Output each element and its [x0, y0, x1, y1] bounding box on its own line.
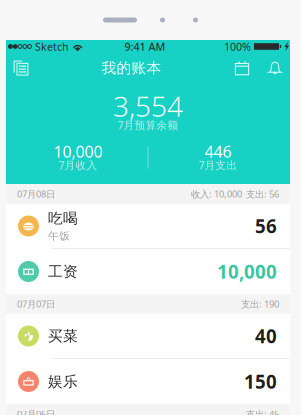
staticText: 40 [255, 324, 277, 348]
staticText: 7月支出 [198, 158, 237, 172]
staticText: 买菜 [48, 327, 78, 345]
staticText: 娱乐 [48, 372, 78, 390]
staticText: 9:41 AM [124, 39, 165, 54]
button[interactable]: 工资 [6, 249, 290, 294]
button[interactable]: 买菜 [6, 314, 290, 359]
staticText: 56 [255, 214, 277, 238]
staticText: 3,554 [113, 87, 183, 125]
staticText: 07月06日 [17, 408, 55, 415]
staticText: 午饭 [48, 229, 70, 243]
staticText: 7月收入 [58, 158, 97, 172]
button[interactable]: Calendar [229, 54, 255, 82]
staticText: 07月08日 [17, 188, 55, 200]
staticText: 446 [204, 141, 231, 162]
staticText: 工资 [48, 262, 78, 280]
staticText: 10,000 [53, 141, 102, 162]
staticText: 10,000 [217, 259, 277, 284]
staticText: 我的账本 [101, 59, 161, 77]
staticText: 支出: 190 [241, 298, 279, 310]
staticText: Sketch [35, 39, 69, 54]
button[interactable]: 吃喝 [6, 204, 290, 249]
staticText: 07月07日 [17, 298, 55, 310]
button[interactable]: Notifications [262, 54, 288, 82]
staticText: 吃喝 [48, 209, 78, 227]
staticText: 150 [244, 369, 277, 394]
button[interactable]: Ledgers [8, 54, 34, 82]
button[interactable]: 娱乐 [6, 359, 290, 404]
staticText: 收入: 10,000 支出: 56 [191, 188, 279, 200]
staticText: 支出: 45 [246, 408, 279, 415]
staticText: 7月预算余额 [117, 118, 178, 132]
staticText: 100% [224, 39, 251, 54]
